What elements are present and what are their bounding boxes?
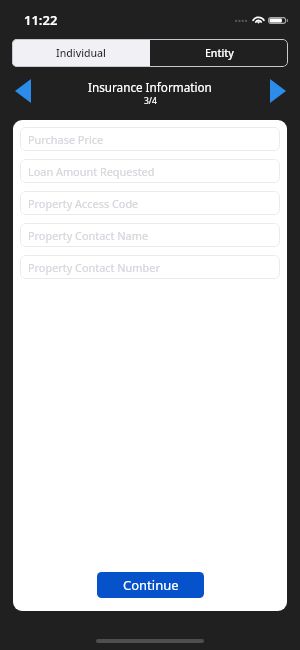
- staticText: Insurance Information: [88, 79, 212, 95]
- button[interactable]: Purchase Price: [20, 127, 280, 151]
- staticText: Property Contact Name: [28, 228, 149, 243]
- staticText: Loan Amount Requested: [28, 164, 155, 179]
- button[interactable]: Previous step: [9, 77, 37, 105]
- staticText: Purchase Price: [28, 132, 104, 147]
- staticText: Property Access Code: [28, 196, 139, 211]
- staticText: Continue: [123, 576, 179, 594]
- button[interactable]: Loan Amount Requested: [20, 159, 280, 183]
- staticText: 11:22: [24, 11, 58, 29]
- staticText: Property Contact Number: [28, 260, 160, 275]
- button[interactable]: Property Contact Number: [20, 255, 280, 279]
- button[interactable]: Next step: [264, 77, 292, 105]
- button[interactable]: Continue: [97, 572, 204, 598]
- staticText: Individual: [56, 46, 106, 60]
- staticText: 3/4: [144, 95, 157, 107]
- button[interactable]: Individual: [12, 39, 150, 67]
- button[interactable]: Property Contact Name: [20, 223, 280, 247]
- button[interactable]: Property Access Code: [20, 191, 280, 215]
- staticText: Entity: [205, 46, 234, 60]
- button[interactable]: Entity: [150, 39, 288, 67]
